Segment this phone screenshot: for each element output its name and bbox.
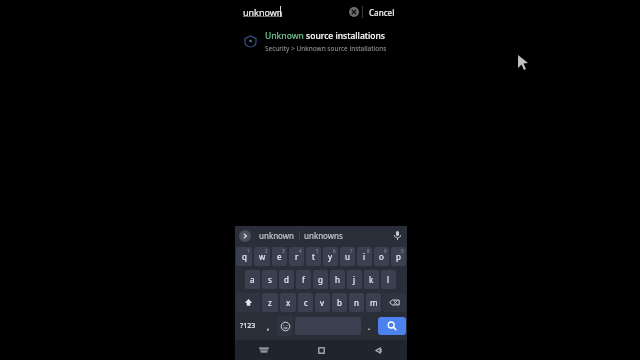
staticText: o — [379, 251, 384, 262]
button[interactable]: More suggestions — [238, 229, 251, 242]
button[interactable]: z — [262, 293, 278, 312]
staticText: u — [345, 251, 350, 262]
staticText: 6 — [333, 248, 336, 254]
button[interactable]: v — [315, 293, 330, 312]
staticText: 9 — [384, 248, 387, 254]
button[interactable]: m — [366, 293, 381, 312]
button[interactable]: Unknown source installations — [235, 24, 407, 58]
staticText: 8 — [367, 248, 370, 254]
staticText: . — [368, 321, 371, 332]
staticText: x — [286, 297, 291, 308]
button[interactable]: t — [306, 247, 321, 266]
button[interactable]: h — [330, 270, 345, 289]
staticText: v — [320, 297, 325, 308]
button[interactable]: o — [374, 247, 389, 266]
staticText: 5 — [316, 248, 319, 254]
button[interactable]: q — [236, 247, 252, 266]
button[interactable]: ?123 — [236, 315, 260, 337]
staticText: Cancel — [369, 7, 395, 18]
staticText: unknown — [259, 230, 295, 241]
staticText: unknown — [243, 6, 283, 18]
staticText: e — [277, 251, 282, 262]
button[interactable]: a — [245, 270, 260, 289]
staticText: z — [268, 297, 272, 308]
button[interactable]: i — [357, 247, 372, 266]
button[interactable]: Back — [350, 340, 407, 360]
button[interactable]: Clear search — [346, 4, 362, 20]
button[interactable]: Home — [293, 340, 350, 360]
button[interactable]: s — [262, 270, 277, 289]
button[interactable]: unknowns — [300, 230, 347, 241]
button[interactable]: n — [349, 293, 364, 312]
staticText: f — [302, 274, 305, 285]
button[interactable]: l — [381, 270, 396, 289]
button[interactable]: c — [298, 293, 313, 312]
button[interactable]: , — [262, 315, 275, 337]
staticText: 3 — [282, 248, 285, 254]
button[interactable]: . — [363, 315, 376, 337]
staticText: l — [387, 274, 390, 285]
staticText: d — [284, 274, 289, 285]
staticText: 7 — [350, 248, 353, 254]
button[interactable]: Voice input — [390, 228, 404, 242]
staticText: 4 — [299, 248, 302, 254]
staticText: b — [337, 297, 342, 308]
staticText: a — [250, 274, 255, 285]
staticText: unknowns — [304, 230, 343, 241]
button[interactable]: y — [323, 247, 338, 266]
staticText: t — [312, 251, 315, 262]
button[interactable]: unknown — [255, 230, 299, 241]
staticText: w — [259, 251, 266, 262]
staticText: ?123 — [240, 321, 256, 331]
staticText: j — [353, 274, 356, 285]
button[interactable]: Backspace — [383, 293, 406, 312]
staticText: k — [369, 274, 374, 285]
staticText: , — [267, 321, 270, 332]
button[interactable]: k — [364, 270, 379, 289]
staticText: c — [304, 297, 308, 308]
button[interactable]: w — [254, 247, 270, 266]
staticText: h — [335, 274, 340, 285]
staticText: 2 — [265, 248, 268, 254]
staticText: s — [268, 274, 272, 285]
staticText: Security > Unknown source installations — [265, 44, 387, 53]
staticText: p — [396, 251, 401, 262]
button[interactable]: Shift — [236, 293, 260, 312]
staticText: q — [242, 251, 247, 262]
staticText: r — [295, 251, 299, 262]
staticText: 1 — [247, 248, 250, 254]
button[interactable]: d — [279, 270, 294, 289]
button[interactable]: r — [289, 247, 304, 266]
button[interactable]: Cancel — [369, 7, 395, 18]
button[interactable]: f — [296, 270, 311, 289]
staticText: Unknown source installations — [265, 30, 385, 42]
button[interactable]: Emoji — [277, 316, 293, 336]
staticText: g — [318, 274, 323, 285]
button[interactable]: g — [313, 270, 328, 289]
staticText: y — [328, 251, 333, 262]
staticText: m — [370, 297, 378, 308]
button[interactable]: e — [272, 247, 287, 266]
button[interactable]: x — [280, 293, 296, 312]
button[interactable]: b — [332, 293, 347, 312]
button[interactable]: p — [391, 247, 406, 266]
staticText: n — [354, 297, 359, 308]
button[interactable]: u — [340, 247, 355, 266]
staticText: i — [363, 251, 366, 262]
button[interactable]: Search — [378, 317, 406, 335]
button[interactable]: j — [347, 270, 362, 289]
staticText: 0 — [401, 248, 404, 254]
button[interactable]: Recent apps — [235, 340, 293, 360]
